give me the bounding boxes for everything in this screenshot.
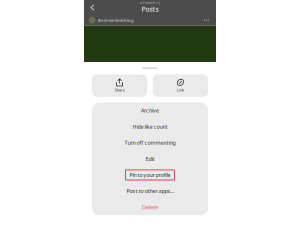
button[interactable]: Turn off commenting xyxy=(92,135,208,151)
button[interactable]: Pin to your profile xyxy=(92,167,208,183)
staticText: Andrew Smithing xyxy=(98,18,134,23)
staticText: Post to other apps... xyxy=(126,187,173,195)
staticText: Delete xyxy=(142,204,158,211)
button[interactable]: Post to other apps... xyxy=(92,183,208,199)
staticText: Edit xyxy=(145,155,154,162)
staticText: Turn off commenting xyxy=(124,139,175,146)
staticText: Posts xyxy=(141,5,158,14)
staticText: Archive xyxy=(141,107,159,114)
staticText: Share xyxy=(115,87,125,92)
button[interactable]: Hide like count xyxy=(92,119,208,135)
staticText: Pin to your profile xyxy=(129,171,170,178)
button[interactable]: Link xyxy=(153,74,208,97)
button[interactable]: More options xyxy=(202,18,211,23)
staticText: Hide like count xyxy=(132,123,167,130)
button[interactable]: Back xyxy=(87,1,98,14)
button[interactable]: Delete xyxy=(92,199,208,215)
staticText: andrewsmithing xyxy=(139,1,160,5)
button[interactable]: Archive xyxy=(92,102,208,119)
button[interactable]: Edit xyxy=(92,151,208,167)
staticText: Link xyxy=(177,87,184,92)
button[interactable]: Share xyxy=(92,74,147,97)
